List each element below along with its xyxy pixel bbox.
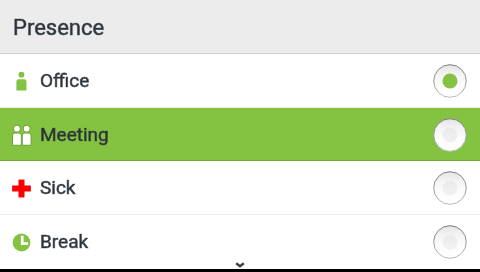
button[interactable]: Selected — [433, 64, 467, 98]
staticText: Break — [40, 230, 89, 252]
staticText: Meeting — [40, 123, 109, 145]
button[interactable]: Not selected — [433, 118, 467, 152]
button[interactable]: Office — [0, 54, 480, 108]
staticText: Meeting — [40, 123, 109, 145]
staticText: Presence — [13, 15, 105, 41]
button[interactable]: Meeting — [0, 108, 480, 161]
staticText: Break — [40, 230, 89, 252]
staticText: Office — [40, 69, 90, 91]
button[interactable]: Show more — [0, 256, 480, 269]
button[interactable]: Sick — [0, 161, 480, 215]
staticText: Office — [40, 69, 90, 91]
staticText: Sick — [40, 176, 76, 198]
staticText: Presence — [13, 15, 105, 41]
button[interactable]: Not selected — [433, 225, 467, 259]
button[interactable]: Break — [0, 215, 480, 269]
staticText: Sick — [40, 176, 76, 198]
button[interactable]: Not selected — [433, 171, 467, 205]
